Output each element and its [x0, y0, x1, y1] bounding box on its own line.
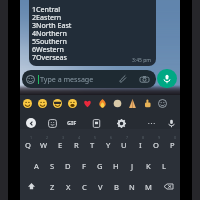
- button[interactable]: [20, 95, 35, 111]
- button[interactable]: Type a message: [22, 70, 156, 88]
- staticText: 3North East: [32, 20, 72, 28]
- button[interactable]: 0: [164, 133, 180, 154]
- button[interactable]: J: [124, 155, 140, 176]
- staticText: J: [131, 161, 134, 171]
- staticText: E: [58, 140, 63, 150]
- staticText: U: [121, 140, 127, 150]
- staticText: 0: [174, 135, 177, 140]
- button[interactable]: H: [108, 155, 124, 176]
- button[interactable]: Shift: [23, 176, 39, 197]
- button[interactable]: L: [156, 155, 172, 176]
- staticText: B: [114, 182, 119, 192]
- staticText: W: [40, 140, 48, 150]
- button[interactable]: [80, 95, 95, 111]
- other: Attach: [119, 75, 128, 84]
- button[interactable]: M: [140, 176, 156, 197]
- staticText: R: [74, 140, 79, 150]
- button[interactable]: [95, 95, 110, 111]
- button[interactable]: Voice input: [165, 117, 177, 129]
- button[interactable]: Settings: [115, 117, 127, 129]
- staticText: 2Eastern: [32, 12, 62, 20]
- button[interactable]: Z: [44, 176, 60, 197]
- staticText: 5: [94, 135, 97, 140]
- staticText: 1: [30, 135, 33, 140]
- staticText: L: [162, 161, 166, 171]
- staticText: 1Central: [32, 4, 61, 12]
- button[interactable]: [140, 95, 155, 111]
- button[interactable]: 7: [116, 133, 132, 154]
- button[interactable]: Stickers: [46, 117, 58, 129]
- button[interactable]: Back: [26, 118, 36, 128]
- button[interactable]: Record voice message: [157, 69, 177, 88]
- staticText: 9: [158, 135, 161, 140]
- button[interactable]: C: [76, 176, 92, 197]
- staticText: 2: [46, 135, 49, 140]
- button[interactable]: 3: [52, 133, 68, 154]
- staticText: X: [66, 182, 71, 192]
- staticText: H: [113, 161, 119, 171]
- button[interactable]: 6: [100, 133, 116, 154]
- staticText: A: [34, 161, 39, 171]
- staticText: S: [50, 161, 55, 171]
- button[interactable]: N: [124, 176, 140, 197]
- staticText: Type a message: [40, 74, 94, 84]
- staticText: 3: [62, 135, 65, 140]
- button[interactable]: A: [28, 155, 44, 176]
- button[interactable]: [125, 95, 140, 111]
- staticText: Y: [106, 140, 111, 150]
- staticText: 8: [142, 135, 145, 140]
- staticText: 4: [78, 135, 81, 140]
- staticText: Q: [25, 140, 31, 150]
- staticText: P: [170, 140, 175, 150]
- staticText: D: [65, 161, 71, 171]
- button[interactable]: Clipboard: [90, 117, 102, 129]
- button[interactable]: K: [140, 155, 156, 176]
- button[interactable]: G: [92, 155, 108, 176]
- button[interactable]: [110, 95, 125, 111]
- staticText: G: [97, 161, 103, 171]
- button[interactable]: 9: [148, 133, 164, 154]
- staticText: O: [153, 140, 159, 150]
- staticText: 6: [110, 135, 113, 140]
- staticText: I: [139, 140, 142, 150]
- staticText: N: [129, 182, 135, 192]
- button[interactable]: F: [76, 155, 92, 176]
- button[interactable]: 2: [36, 133, 52, 154]
- button[interactable]: [155, 95, 170, 111]
- staticText: V: [98, 182, 103, 192]
- staticText: K: [146, 161, 151, 171]
- button[interactable]: D: [60, 155, 76, 176]
- staticText: M: [145, 182, 152, 192]
- staticText: 7Overseas: [32, 52, 67, 60]
- staticText: 7: [126, 135, 129, 140]
- button[interactable]: 1Central: [29, 0, 156, 66]
- button[interactable]: B: [108, 176, 124, 197]
- button[interactable]: X: [60, 176, 76, 197]
- button[interactable]: V: [92, 176, 108, 197]
- button[interactable]: S: [44, 155, 60, 176]
- staticText: GIF: [67, 119, 77, 127]
- staticText: 5Southern: [32, 36, 67, 44]
- button[interactable]: More options: [145, 117, 157, 129]
- staticText: T: [90, 140, 95, 150]
- button[interactable]: 4: [68, 133, 84, 154]
- button[interactable]: 5: [84, 133, 100, 154]
- staticText: Z: [50, 182, 55, 192]
- button[interactable]: GIF: [64, 117, 80, 129]
- staticText: 4Northern: [32, 28, 67, 36]
- button[interactable]: 8: [132, 133, 148, 154]
- staticText: C: [82, 182, 87, 192]
- staticText: F: [82, 161, 86, 171]
- button[interactable]: 1: [20, 133, 36, 154]
- staticText: 3:45 pm: [132, 57, 151, 64]
- button[interactable]: [65, 95, 80, 111]
- button[interactable]: [50, 95, 65, 111]
- button[interactable]: Backspace: [160, 176, 176, 197]
- staticText: 6Western: [32, 44, 64, 52]
- button[interactable]: [35, 95, 50, 111]
- other: Camera: [140, 75, 149, 84]
